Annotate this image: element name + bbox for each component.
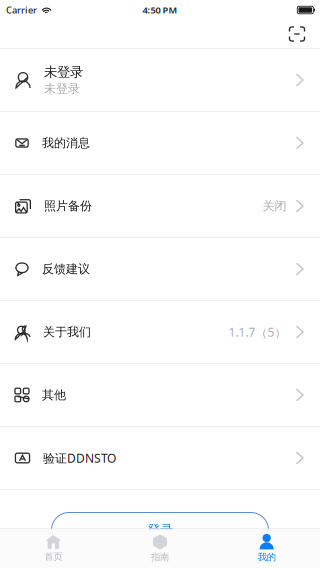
staticText: Carrier [6,4,37,16]
staticText: 我的 [258,551,276,563]
button[interactable]: Scan QR code [280,20,314,48]
staticText: 未登录 [44,81,80,96]
staticText: 其他 [42,388,66,402]
staticText: 4:50 PM [142,4,177,16]
staticText: 关闭 [262,199,286,213]
button[interactable]: 关于我们 [0,301,320,364]
button[interactable]: 照片备份 [0,175,320,238]
staticText: 未登录 [44,64,83,80]
staticText: 首页 [44,551,62,562]
staticText: 反馈建议 [42,262,90,276]
button[interactable]: 反馈建议 [0,238,320,301]
staticText: 我的消息 [42,136,90,150]
staticText: 登录 [147,522,173,538]
staticText: 验证DDNSTO [43,450,116,466]
button[interactable]: 其他 [0,364,320,427]
button[interactable]: 指南 [107,529,213,568]
staticText: 照片备份 [44,199,92,213]
button[interactable]: 首页 [0,529,107,568]
button[interactable]: 我的消息 [0,112,320,175]
button[interactable]: 登录 [51,512,269,548]
button[interactable]: 未登录 [0,49,320,112]
staticText: 关于我们 [43,325,91,339]
staticText: 指南 [151,551,169,563]
button[interactable]: 我的 [213,529,320,568]
staticText: 1.1.7（5） [228,324,286,340]
button[interactable]: 验证DDNSTO [0,427,320,490]
